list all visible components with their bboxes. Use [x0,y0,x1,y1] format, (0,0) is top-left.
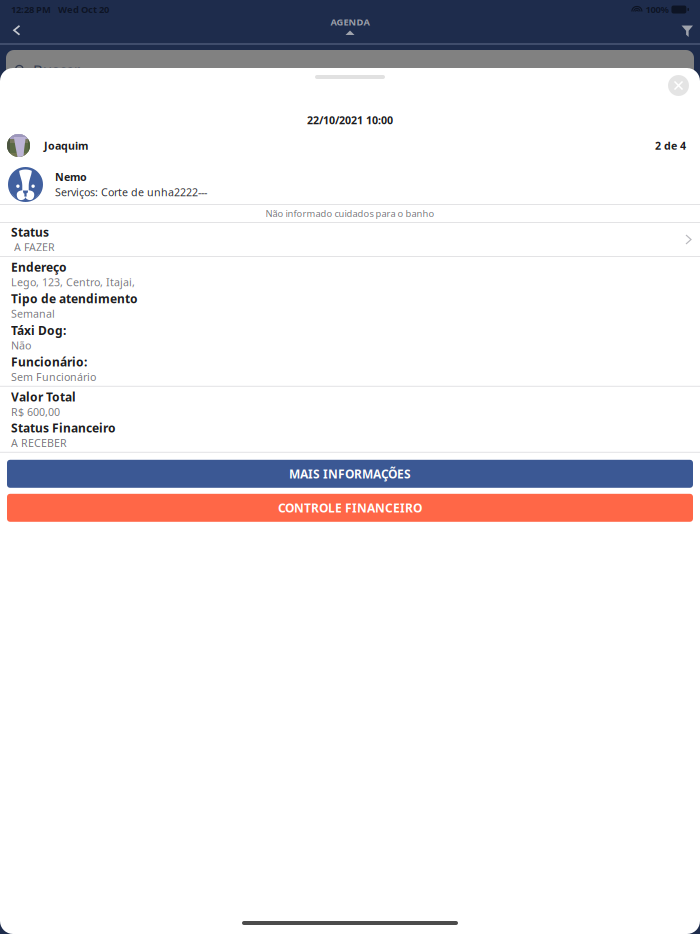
button[interactable]: Close [662,68,700,102]
staticText: Semanal [11,307,55,321]
staticText: 2 de 4 [655,138,686,153]
staticText: Endereço [11,259,67,275]
staticText: Lego, 123, Centro, Itajai, [11,275,135,289]
staticText: 12:28 PM [11,3,51,16]
staticText: AGENDA [330,16,369,28]
staticText: CONTROLE FINANCEIRO [278,500,422,516]
staticText: Buscar [33,60,80,79]
staticText: A RECEBER [11,436,67,450]
staticText: Serviços: Corte de unha2222--- [55,185,207,199]
staticText: Tipo de atendimento [11,291,138,307]
staticText: 100% [645,3,668,16]
staticText: Status [11,224,49,240]
staticText: Status Financeiro [11,420,116,436]
staticText: Wed Oct 20 [58,3,109,16]
staticText: Valor Total [11,389,76,405]
staticText: A FAZER [14,240,55,254]
staticText: MAIS INFORMAÇÕES [289,466,411,482]
staticText: Não informado cuidados para o banho [265,207,434,220]
button[interactable]: MAIS INFORMAÇÕES [0,460,700,488]
button[interactable]: Filter [671,19,700,44]
button[interactable]: CONTROLE FINANCEIRO [0,494,700,522]
button[interactable]: Back [0,19,29,44]
button[interactable]: Status [0,223,700,256]
staticText: Não [11,338,31,352]
staticText: Nemo [55,170,87,184]
staticText: Táxi Dog: [11,322,66,338]
staticText: 22/10/2021 10:00 [307,113,393,127]
staticText: Sem Funcionário [11,370,96,384]
staticText: R$ 600,00 [11,405,60,419]
staticText: Joaquim [44,138,88,153]
staticText: Funcionário: [11,354,87,370]
